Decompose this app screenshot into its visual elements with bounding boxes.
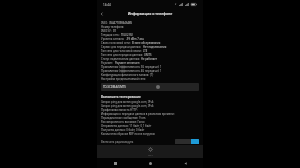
button[interactable]: Home (133, 158, 168, 168)
staticText: Приложения (эффективность 4G передачи): … (101, 69, 162, 73)
staticText: Настройка предпочитаемой сети: (101, 77, 146, 81)
staticText: Запрос ping для меню google.com, IPv6: (101, 104, 155, 108)
staticText: Роуминг: (101, 61, 114, 65)
staticText: Отправлено данных: 11 байт, 0,1 байт (101, 124, 152, 128)
button[interactable]: Recents (97, 158, 133, 168)
staticText: Не работает (141, 57, 157, 61)
staticText: Нет подключения (143, 45, 167, 49)
staticText: Рассинхронность вызовов: Голос (101, 120, 145, 124)
staticText: Периодическое сообщение: 9 сек (101, 116, 146, 120)
staticText: ▾ (175, 3, 177, 6)
staticText: Тест (148, 153, 153, 156)
button[interactable]: Back (97, 9, 106, 18)
staticText: В зоне обслуживания (132, 41, 161, 45)
button[interactable]: TD-SCDMA/UMTS (101, 83, 199, 91)
staticText: Профильная емкость HTTP: (101, 108, 138, 112)
staticText: Уровень сигнала: (101, 37, 125, 41)
staticText: LTE (143, 49, 148, 53)
staticText: UMTS (144, 53, 152, 57)
staticText: TD-SCDMA/UMTS (103, 85, 126, 89)
staticText: 354471090646485 (109, 21, 133, 25)
staticText: Тип сети для передачи данных: (101, 53, 143, 57)
staticText: Текущая сеть: (101, 33, 120, 37)
staticText: TELE2 RU (121, 33, 133, 37)
staticText: Связь голосовой сети: (101, 41, 131, 45)
staticText: Количество сбросов RRP после загрузки: (101, 132, 156, 136)
staticText: IMEI SV: (101, 29, 112, 33)
staticText: Включить радиомодуль (101, 140, 134, 144)
button[interactable]: Back (168, 158, 203, 168)
button[interactable]: Включить радиомодуль (101, 138, 199, 145)
staticText: Тип сети для голосовой связи: (101, 49, 142, 53)
staticText: Статус подключения данных: (101, 57, 140, 61)
staticText: IMEI: (101, 21, 108, 25)
staticText: Сервис для передачи данных: (101, 45, 142, 49)
staticText: 14:44 (103, 3, 111, 7)
staticText: Номер телефона: (101, 25, 125, 29)
other: Settings (148, 147, 153, 152)
staticText: Получено данных: 0 байт, 0 байт (101, 128, 145, 132)
staticText: Конфигурация физического канала: {T} (101, 73, 154, 77)
staticText: Роуминг отключен (115, 61, 140, 65)
staticText: Запрос ping для меню google.com, IPv4: (101, 100, 155, 104)
staticText: -99 dBm 7 asu (126, 37, 144, 41)
staticText: 01 (113, 29, 117, 33)
staticText: Информация о передаче данных в реальном … (101, 112, 175, 116)
staticText: Информация о телефоне (106, 11, 194, 16)
staticText: Выполнить тестирование (101, 95, 141, 99)
staticText: Приложения (эффективность 3G передачи): … (101, 65, 162, 69)
